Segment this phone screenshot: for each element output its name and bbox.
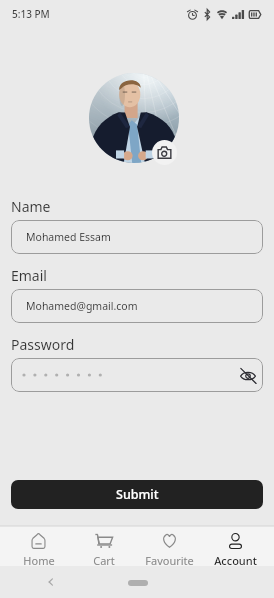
button[interactable]: Change profile photo <box>152 140 177 165</box>
button[interactable]: Mohamed Essam <box>11 220 263 254</box>
button[interactable]: Home <box>128 580 148 586</box>
button[interactable]: Back <box>44 575 58 589</box>
staticText: Password <box>11 335 75 354</box>
staticText: Mohamed Essam <box>26 230 111 244</box>
staticText: Email <box>11 266 47 285</box>
staticText: 5:13 PM <box>12 7 50 21</box>
staticText: Home <box>23 553 55 566</box>
button[interactable]: Account <box>202 527 268 566</box>
button[interactable]: Show password <box>11 358 263 392</box>
staticText: Submit <box>116 486 159 503</box>
button[interactable]: Show password <box>237 364 259 386</box>
staticText: Account <box>214 553 257 566</box>
staticText: Cart <box>93 553 115 566</box>
staticText: Name <box>11 197 51 216</box>
staticText: Favourite <box>145 553 194 566</box>
button[interactable]: Cart <box>71 527 136 566</box>
button[interactable]: Mohamed@gmail.com <box>11 289 263 323</box>
button[interactable]: Home <box>6 527 71 566</box>
button[interactable]: Submit <box>11 480 263 509</box>
staticText: Mohamed@gmail.com <box>26 299 138 313</box>
button[interactable]: Favourite <box>136 527 202 566</box>
